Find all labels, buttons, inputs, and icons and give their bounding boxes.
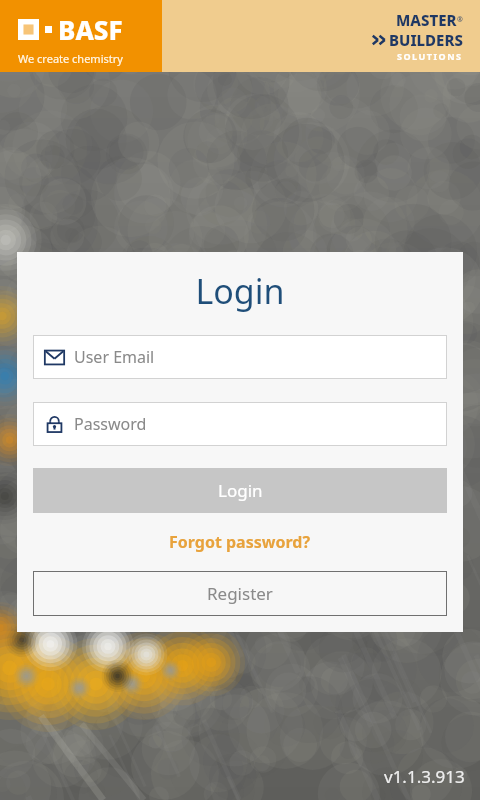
- staticText: User Email: [74, 346, 155, 368]
- staticText: Login: [218, 479, 263, 502]
- staticText: BUILDERS: [389, 30, 463, 50]
- staticText: We create chemistry: [18, 51, 123, 66]
- staticText: MASTER: [396, 10, 457, 30]
- button[interactable]: Password: [33, 402, 447, 446]
- staticText: BASF: [58, 12, 123, 47]
- button[interactable]: User Email: [33, 335, 447, 379]
- button[interactable]: Forgot password?: [33, 531, 447, 553]
- staticText: Forgot password?: [169, 531, 311, 553]
- staticText: v1.1.3.913: [384, 765, 465, 788]
- staticText: Register: [207, 582, 273, 605]
- staticText: Password: [74, 413, 147, 435]
- staticText: Login: [33, 268, 447, 314]
- button[interactable]: Login: [33, 468, 447, 513]
- button[interactable]: Register: [33, 571, 447, 616]
- staticText: ®: [457, 15, 463, 25]
- staticText: SOLUTIONS: [397, 50, 463, 62]
